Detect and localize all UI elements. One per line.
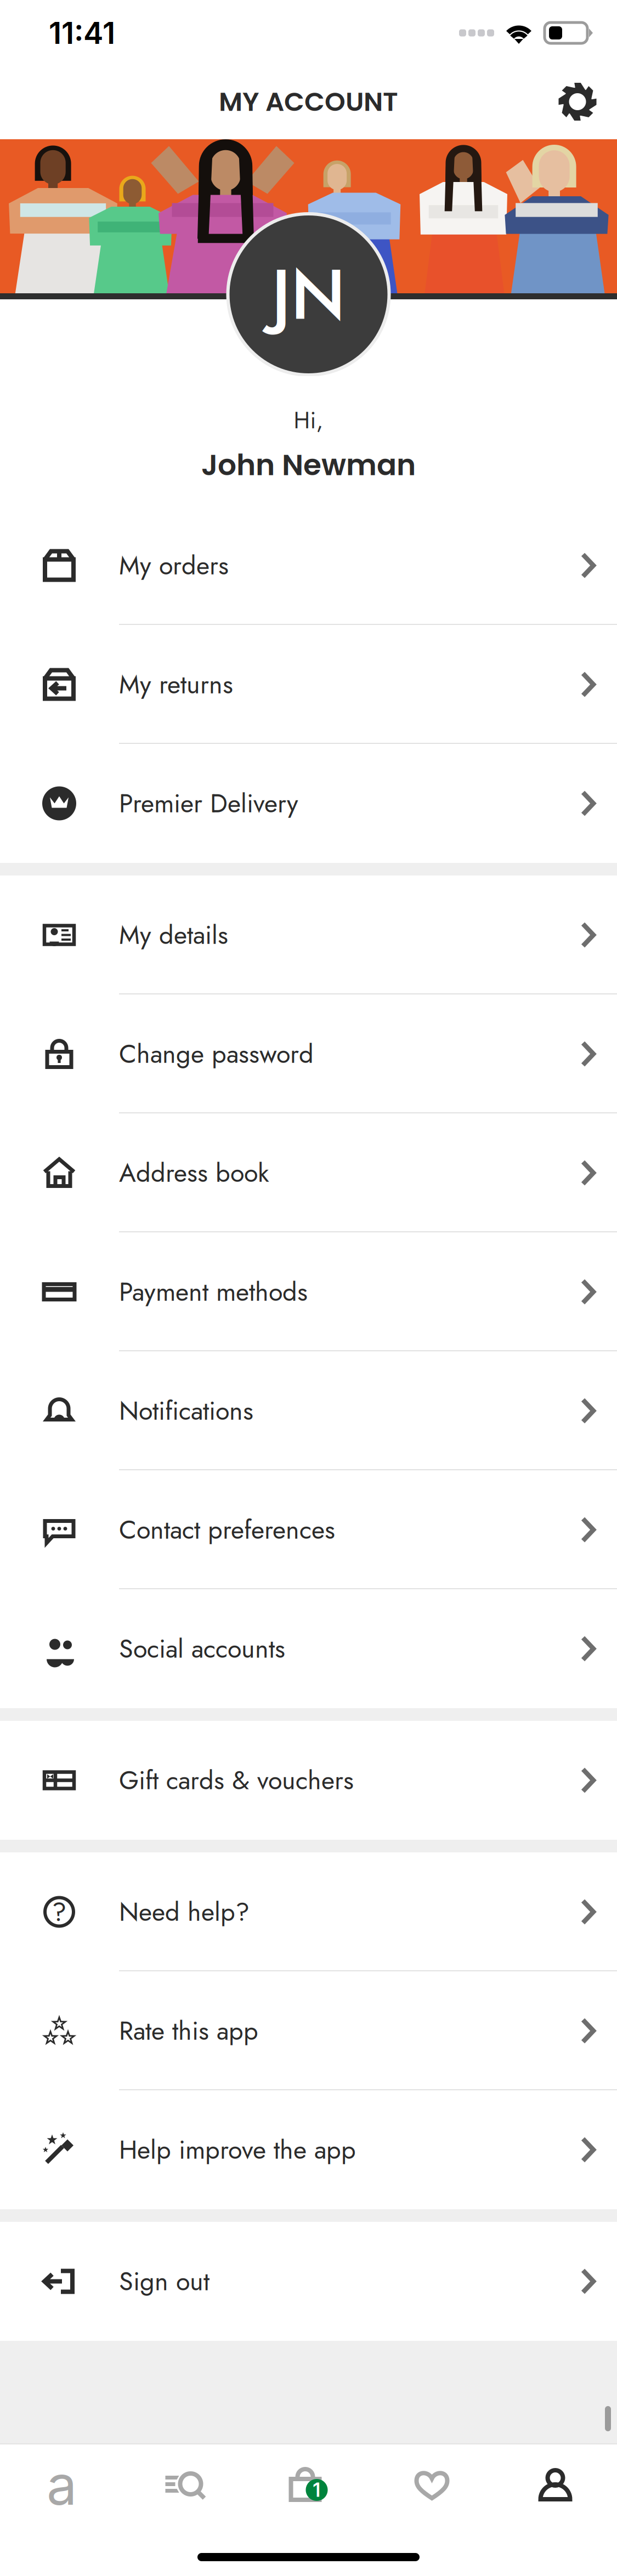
button[interactable]: Gift cards & vouchers	[0, 1721, 617, 1840]
staticText: Address book	[119, 1154, 269, 1191]
staticText: a	[47, 2452, 77, 2518]
staticText: Gift cards & vouchers	[119, 1762, 354, 1799]
staticText: 1	[313, 2478, 321, 2501]
button[interactable]: Change password	[0, 994, 617, 1113]
button[interactable]: Notifications	[0, 1351, 617, 1470]
button[interactable]: Sign out	[0, 2222, 617, 2341]
button[interactable]: Settings	[558, 82, 597, 121]
button[interactable]: Premier Delivery	[0, 744, 617, 863]
staticText: Social accounts	[119, 1630, 285, 1667]
staticText: 11:41	[49, 15, 115, 51]
staticText: Rate this app	[119, 2012, 258, 2049]
staticText: Contact preferences	[119, 1511, 335, 1548]
button[interactable]: Address book	[0, 1113, 617, 1232]
button[interactable]: Search	[123, 2444, 247, 2526]
staticText: Sign out	[119, 2263, 210, 2300]
staticText: John Newman	[201, 444, 416, 485]
staticText: My details	[119, 916, 228, 953]
button[interactable]: My details	[0, 875, 617, 994]
staticText: Need help?	[119, 1893, 250, 1930]
button[interactable]: My account	[494, 2444, 617, 2526]
button[interactable]: Bag, 1 item	[247, 2444, 370, 2526]
button[interactable]: My returns	[0, 625, 617, 744]
staticText: My returns	[119, 666, 233, 703]
button[interactable]: Rate this app	[0, 1971, 617, 2090]
staticText: Change password	[119, 1035, 314, 1072]
button[interactable]: Contact preferences	[0, 1470, 617, 1589]
button[interactable]: My orders	[0, 506, 617, 625]
staticText: My orders	[119, 547, 229, 584]
staticText: Help improve the app	[119, 2131, 356, 2168]
button[interactable]: Help improve the app	[0, 2090, 617, 2209]
button[interactable]: Saved items	[370, 2444, 494, 2526]
button[interactable]: Social accounts	[0, 1589, 617, 1708]
staticText: MY ACCOUNT	[219, 83, 398, 120]
staticText: JN	[271, 244, 346, 345]
button[interactable]: ?	[0, 1852, 617, 1971]
button[interactable]: Payment methods	[0, 1232, 617, 1351]
staticText: Hi,	[294, 404, 323, 437]
staticText: Premier Delivery	[119, 785, 298, 822]
staticText: Payment methods	[119, 1273, 308, 1310]
button[interactable]: ASOS home	[0, 2444, 123, 2526]
staticText: ?	[52, 1893, 67, 1931]
staticText: Notifications	[119, 1392, 253, 1429]
